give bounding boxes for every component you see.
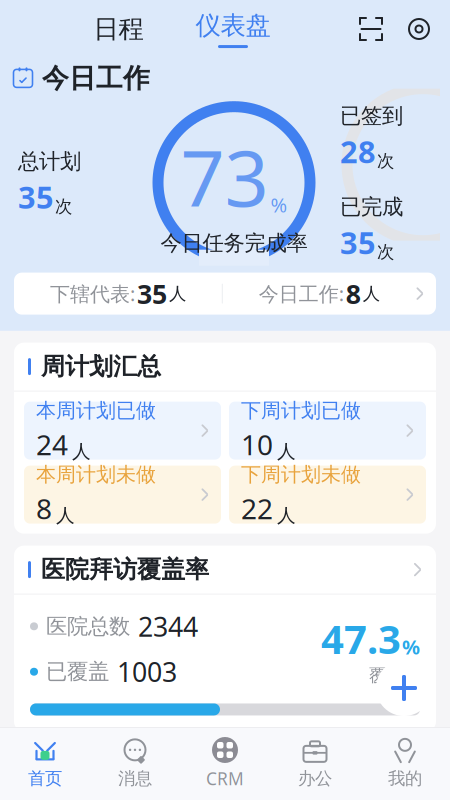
staticText: 总计划 [18, 148, 81, 174]
button[interactable]: 下周计划已做 [229, 402, 426, 460]
staticText: 次 [377, 150, 394, 172]
staticText: 人 [56, 504, 75, 527]
button[interactable]: 消息 [90, 727, 180, 800]
staticText: 今日任务完成率 [160, 230, 307, 256]
staticText: 本周计划未做 [36, 462, 156, 487]
staticText: 日程 [93, 13, 143, 44]
button[interactable]: 日程 [81, 7, 155, 50]
staticText: 人 [277, 504, 296, 527]
staticText: 35 [340, 222, 376, 263]
staticText: 2344 [138, 609, 198, 644]
staticText: 次 [377, 241, 394, 263]
staticText: 1003 [117, 654, 177, 689]
button[interactable]: 设置 [406, 16, 432, 42]
staticText: 下周计划未做 [241, 462, 361, 487]
button[interactable]: 下周计划未做 [229, 466, 426, 524]
staticText: 24 [36, 426, 68, 463]
staticText: 医院总数 [46, 613, 130, 639]
staticText: 22 [241, 490, 273, 527]
button[interactable]: 本周计划未做 [24, 466, 221, 524]
button[interactable]: 新建 [374, 658, 434, 718]
staticText: 10 [241, 426, 273, 463]
button[interactable]: 下辖代表: [14, 273, 436, 315]
staticText: 次 [55, 196, 72, 217]
staticText: 人 [363, 283, 380, 304]
button[interactable]: 扫一扫 [358, 16, 384, 42]
staticText: 73 [180, 125, 268, 228]
staticText: 人 [277, 440, 296, 463]
staticText: % [402, 633, 420, 660]
button[interactable]: 本周计划已做 [24, 402, 221, 460]
staticText: 周计划汇总 [41, 352, 161, 381]
button[interactable]: 首页 [0, 727, 90, 800]
button[interactable]: 仪表盘 [189, 10, 276, 48]
staticText: 35 [137, 276, 167, 311]
staticText: 医院拜访覆盖率 [41, 555, 209, 584]
staticText: 28 [340, 131, 376, 172]
staticText: % [270, 191, 287, 218]
staticText: 已签到 [340, 103, 403, 129]
staticText: 消息 [118, 768, 152, 789]
staticText: 仪表盘 [195, 10, 270, 41]
button[interactable]: 办公 [270, 727, 360, 800]
staticText: 47.3 [321, 612, 401, 665]
button[interactable]: 我的 [360, 727, 450, 800]
staticText: 首页 [28, 768, 62, 789]
staticText: 35 [18, 176, 54, 217]
staticText: 本周计划已做 [36, 398, 156, 423]
staticText: 今日工作 [42, 62, 150, 95]
staticText: 8 [346, 276, 361, 311]
staticText: 今日工作: [259, 280, 344, 307]
staticText: CRM [206, 767, 244, 790]
staticText: 办公 [298, 768, 332, 789]
staticText: 覆盖率 [369, 665, 420, 686]
staticText: 人 [169, 283, 186, 304]
staticText: 我的 [388, 768, 422, 789]
staticText: 下周计划已做 [241, 398, 361, 423]
button[interactable]: CRM [180, 727, 270, 800]
staticText: 下辖代表: [50, 280, 135, 307]
staticText: 已完成 [340, 194, 403, 220]
staticText: 已覆盖 [46, 659, 109, 685]
staticText: 人 [72, 440, 91, 463]
staticText: 8 [36, 490, 52, 527]
